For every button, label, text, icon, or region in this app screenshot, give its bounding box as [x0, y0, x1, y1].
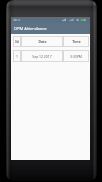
staticText: Date	[38, 39, 47, 44]
button[interactable]: Date	[21, 36, 63, 47]
staticText: 3:33PM	[70, 54, 82, 59]
staticText: Time	[72, 39, 81, 44]
button[interactable]: Id	[13, 36, 21, 47]
staticText: Id	[15, 39, 19, 44]
staticText: 1	[16, 54, 18, 59]
staticText: DPM Attendance	[14, 26, 47, 32]
button[interactable]: Sep 12 2017	[21, 50, 63, 62]
button[interactable]: Time	[63, 36, 89, 47]
staticText: Sep 12 2017	[32, 54, 52, 59]
button[interactable]: DPM Attendance	[11, 23, 90, 34]
button[interactable]: 1	[13, 50, 21, 62]
button[interactable]: 3:33PM	[63, 50, 89, 62]
